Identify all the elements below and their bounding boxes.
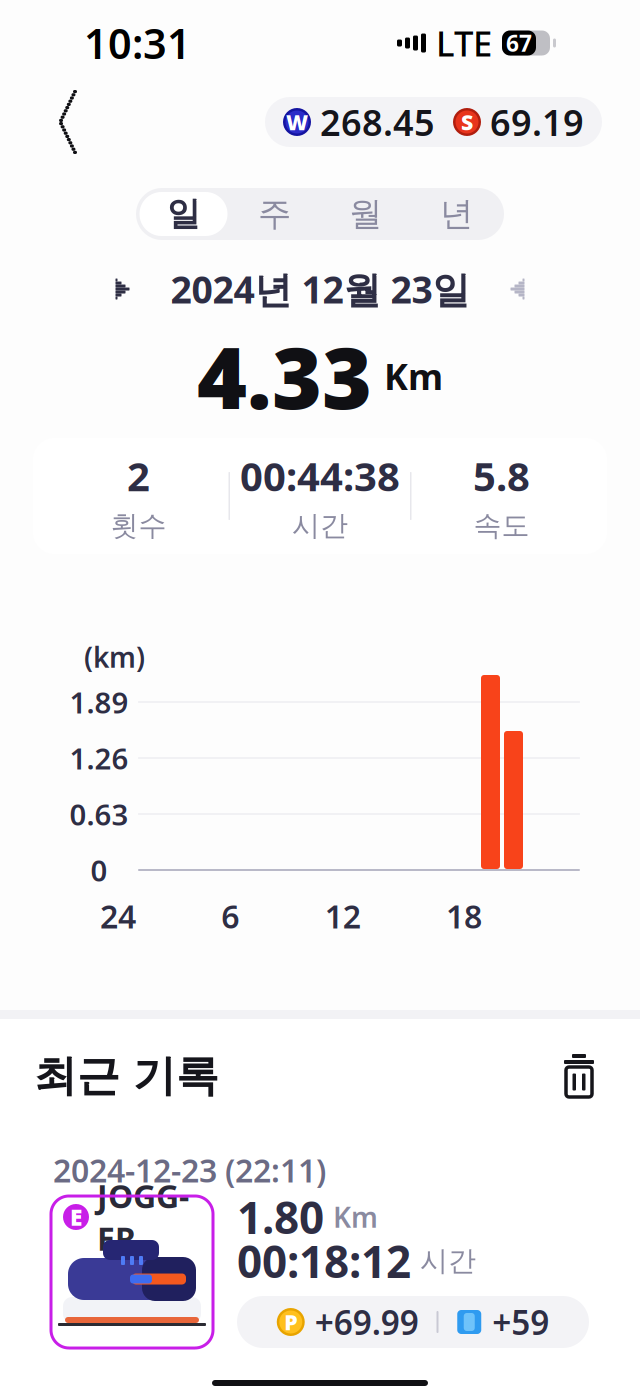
staticText: Km xyxy=(384,352,443,400)
staticText: 1.80 xyxy=(237,1188,324,1246)
staticText: Km xyxy=(333,1198,378,1236)
staticText: 주 xyxy=(258,193,291,234)
staticText: E xyxy=(70,1202,82,1232)
staticText: 12 xyxy=(325,895,361,937)
staticText: 년 xyxy=(440,193,473,234)
staticText: W xyxy=(286,108,308,136)
staticText: 00:18:12 xyxy=(237,1232,411,1290)
staticText: +59 xyxy=(492,1300,549,1344)
staticText: 18 xyxy=(446,895,482,937)
staticText: 1.89 xyxy=(69,682,128,721)
staticText: 6 xyxy=(221,895,239,937)
staticText: 2024-12-23 (22:11) xyxy=(53,1149,326,1191)
staticText: 67 xyxy=(506,28,532,58)
staticText: 시간 xyxy=(292,508,348,543)
staticText: 일 xyxy=(167,193,200,234)
staticText: 5.8 xyxy=(473,449,530,502)
button[interactable]: 주 xyxy=(229,189,320,239)
button[interactable]: 일 xyxy=(138,189,229,239)
button[interactable]: W xyxy=(265,97,602,147)
staticText: 4.33 xyxy=(197,319,372,433)
button[interactable]: 년 xyxy=(411,189,502,239)
button[interactable]: 2024-12-23 (22:11) xyxy=(33,1144,607,1380)
staticText: S xyxy=(461,108,473,136)
staticText: JOGGER xyxy=(97,1174,189,1259)
staticText: 월 xyxy=(349,193,382,234)
staticText: 268.45 xyxy=(320,98,435,146)
button[interactable]: 월 xyxy=(320,189,411,239)
staticText: 0.63 xyxy=(69,794,128,833)
staticText: 69.19 xyxy=(490,98,584,146)
staticText: 시간 xyxy=(420,1244,476,1278)
staticText: 1.26 xyxy=(69,738,128,777)
staticText: 2 xyxy=(127,449,150,502)
button[interactable]: Back xyxy=(38,87,98,157)
staticText: 24 xyxy=(100,895,136,937)
staticText: 2024년 12월 23일 xyxy=(170,264,469,314)
staticText: +69.99 xyxy=(315,1300,419,1344)
button[interactable]: Next day xyxy=(495,267,539,311)
button[interactable]: Delete records xyxy=(552,1049,606,1103)
button[interactable]: Previous day xyxy=(100,267,144,311)
staticText: (km) xyxy=(84,638,145,676)
staticText: 횟수 xyxy=(110,508,166,543)
staticText: LTE xyxy=(436,20,492,66)
staticText: 최근 기록 xyxy=(34,1050,219,1102)
staticText: 10:31 xyxy=(84,16,191,70)
staticText: P xyxy=(284,1308,297,1336)
staticText: 00:44:38 xyxy=(240,449,400,502)
staticText: 속도 xyxy=(473,508,529,543)
staticText: 0 xyxy=(90,850,107,889)
